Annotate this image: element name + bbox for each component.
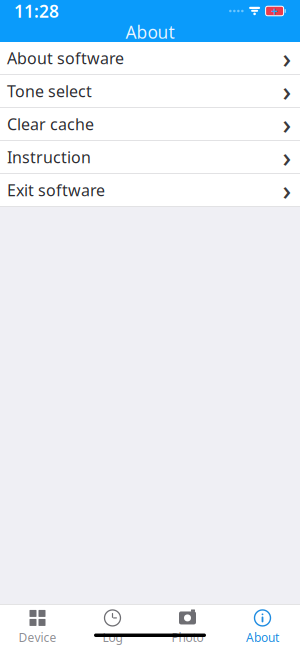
staticText: About [246, 629, 279, 645]
staticText: Instruction [7, 146, 91, 168]
staticText: 11:28 [14, 0, 59, 22]
staticText: › [282, 106, 291, 142]
button[interactable]: About software [0, 42, 300, 75]
button[interactable]: Photo [150, 605, 225, 649]
staticText: Device [18, 629, 56, 645]
staticText: Log [102, 629, 122, 645]
button[interactable]: Device [0, 605, 75, 649]
staticText: Tone select [7, 80, 92, 102]
button[interactable]: About [225, 605, 300, 649]
staticText: Photo [171, 629, 203, 645]
staticText: About [125, 20, 174, 43]
staticText: About software [7, 47, 124, 69]
staticText: Exit software [7, 179, 105, 201]
staticText: › [282, 40, 291, 76]
staticText: › [282, 139, 291, 175]
button[interactable]: Instruction [0, 141, 300, 174]
button[interactable]: Clear cache [0, 108, 300, 141]
staticText: › [282, 172, 291, 208]
staticText: › [282, 73, 291, 109]
button[interactable]: Tone select [0, 75, 300, 108]
staticText: Clear cache [7, 113, 94, 135]
button[interactable]: Log [75, 605, 150, 649]
button[interactable]: Exit software [0, 174, 300, 207]
staticText: + [271, 3, 278, 19]
